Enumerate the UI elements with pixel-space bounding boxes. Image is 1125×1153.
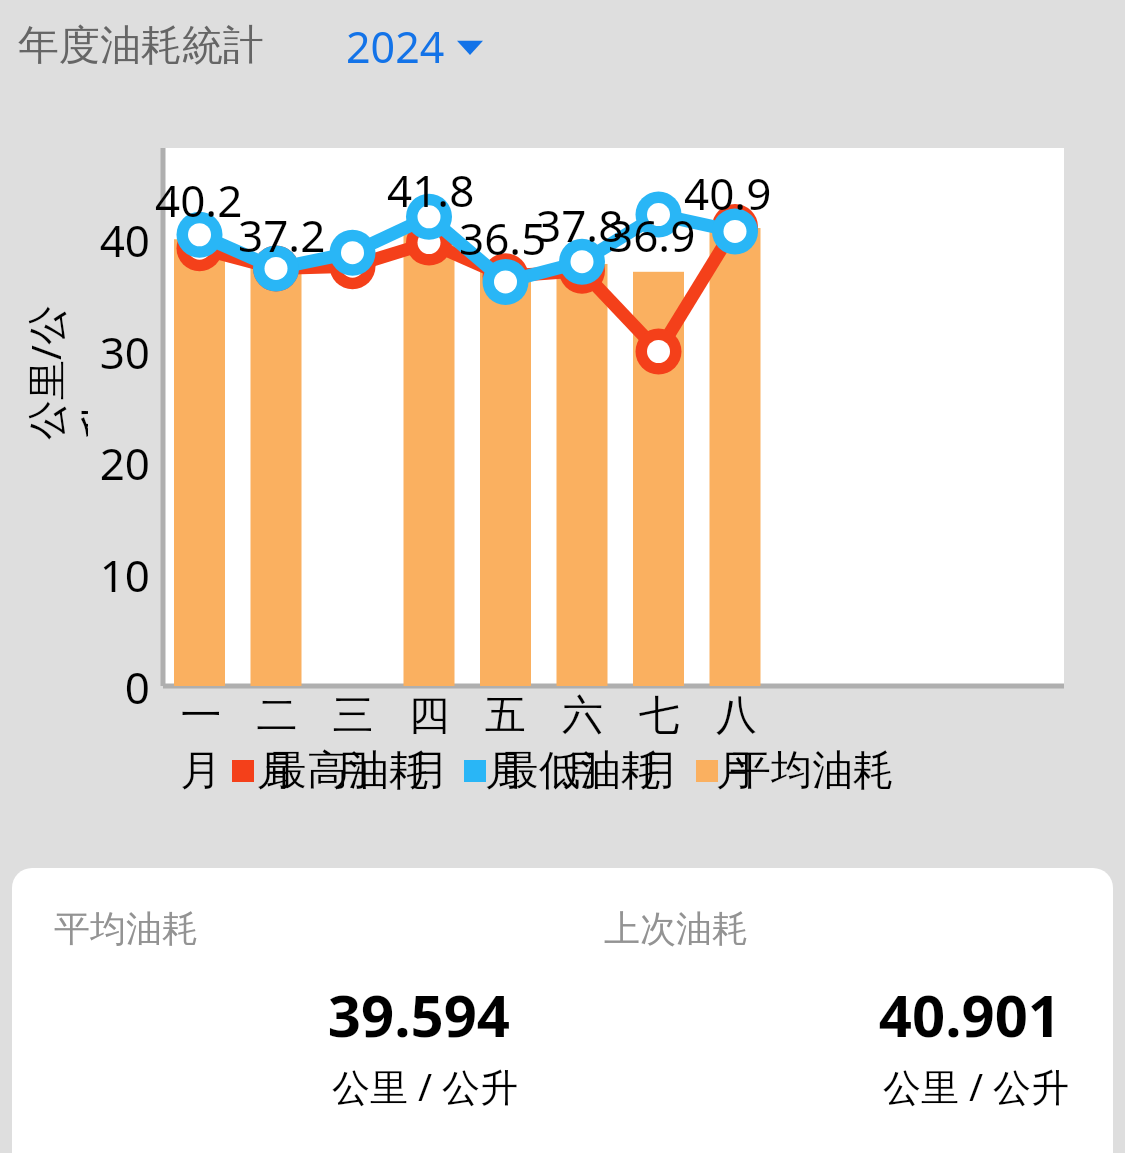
staticText: 40.9 [684, 163, 772, 223]
button[interactable]: 平均油耗 [696, 745, 894, 797]
staticText: 四月 [391, 690, 467, 796]
staticText: 40.901 [562, 975, 1061, 1054]
staticText: 10 [88, 545, 150, 605]
staticText: 七月 [621, 690, 698, 796]
staticText: 40 [88, 210, 150, 270]
staticText: 六月 [544, 690, 621, 796]
button[interactable]: 平均油耗 [12, 868, 1113, 1153]
staticText: 41.8 [387, 160, 475, 220]
staticText: 30 [88, 322, 150, 382]
staticText: 平均油耗 [54, 906, 198, 951]
staticText: 公里 / 公升 [562, 1060, 1069, 1112]
staticText: 一月 [163, 690, 239, 796]
staticText: 36.9 [608, 205, 696, 265]
staticText: 公里 / 公升 [12, 1060, 518, 1112]
staticText: 公里/公升 [18, 290, 88, 440]
staticText: 40.2 [155, 170, 243, 230]
button[interactable]: 2024 [342, 11, 487, 82]
staticText: 20 [88, 433, 150, 493]
staticText: 36.5 [459, 208, 547, 268]
staticText: 最低油耗 [498, 745, 662, 797]
staticText: 五月 [467, 690, 544, 796]
staticText: 39.594 [12, 975, 510, 1054]
staticText: 37.8 [536, 195, 624, 255]
button[interactable]: 最高油耗 [232, 745, 430, 797]
staticText: 年度油耗統計 [18, 20, 264, 72]
staticText: 最高油耗 [266, 745, 430, 797]
staticText: 37.2 [238, 205, 326, 265]
staticText: 三月 [315, 690, 391, 796]
staticText: 二月 [239, 690, 315, 796]
staticText: 0 [88, 657, 150, 717]
staticText: 平均油耗 [730, 745, 894, 797]
button[interactable]: 最低油耗 [464, 745, 662, 797]
staticText: 八月 [698, 690, 775, 796]
staticText: 上次油耗 [604, 906, 748, 951]
staticText: 2024 [346, 17, 445, 76]
